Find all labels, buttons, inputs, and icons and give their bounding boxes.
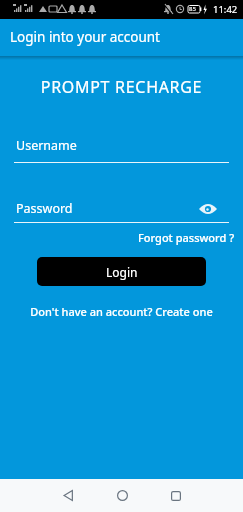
staticText: Login into your account xyxy=(10,28,160,46)
staticText: Username xyxy=(16,137,77,154)
button[interactable]: Login xyxy=(37,257,206,286)
button[interactable] xyxy=(102,479,142,512)
button[interactable]: Password xyxy=(14,200,229,223)
staticText: Password xyxy=(16,200,199,217)
button[interactable]: Forgot password ? xyxy=(138,230,235,245)
button[interactable]: Username xyxy=(14,137,229,163)
button[interactable] xyxy=(48,479,88,512)
staticText: Login xyxy=(106,264,138,280)
staticText: 11:42 xyxy=(213,3,238,16)
button[interactable] xyxy=(156,479,196,512)
staticText: 85 xyxy=(189,5,196,13)
button[interactable] xyxy=(199,204,217,214)
staticText: PROMPT RECHARGE xyxy=(0,76,243,98)
button[interactable]: Don't have an account? Create one xyxy=(0,304,243,319)
